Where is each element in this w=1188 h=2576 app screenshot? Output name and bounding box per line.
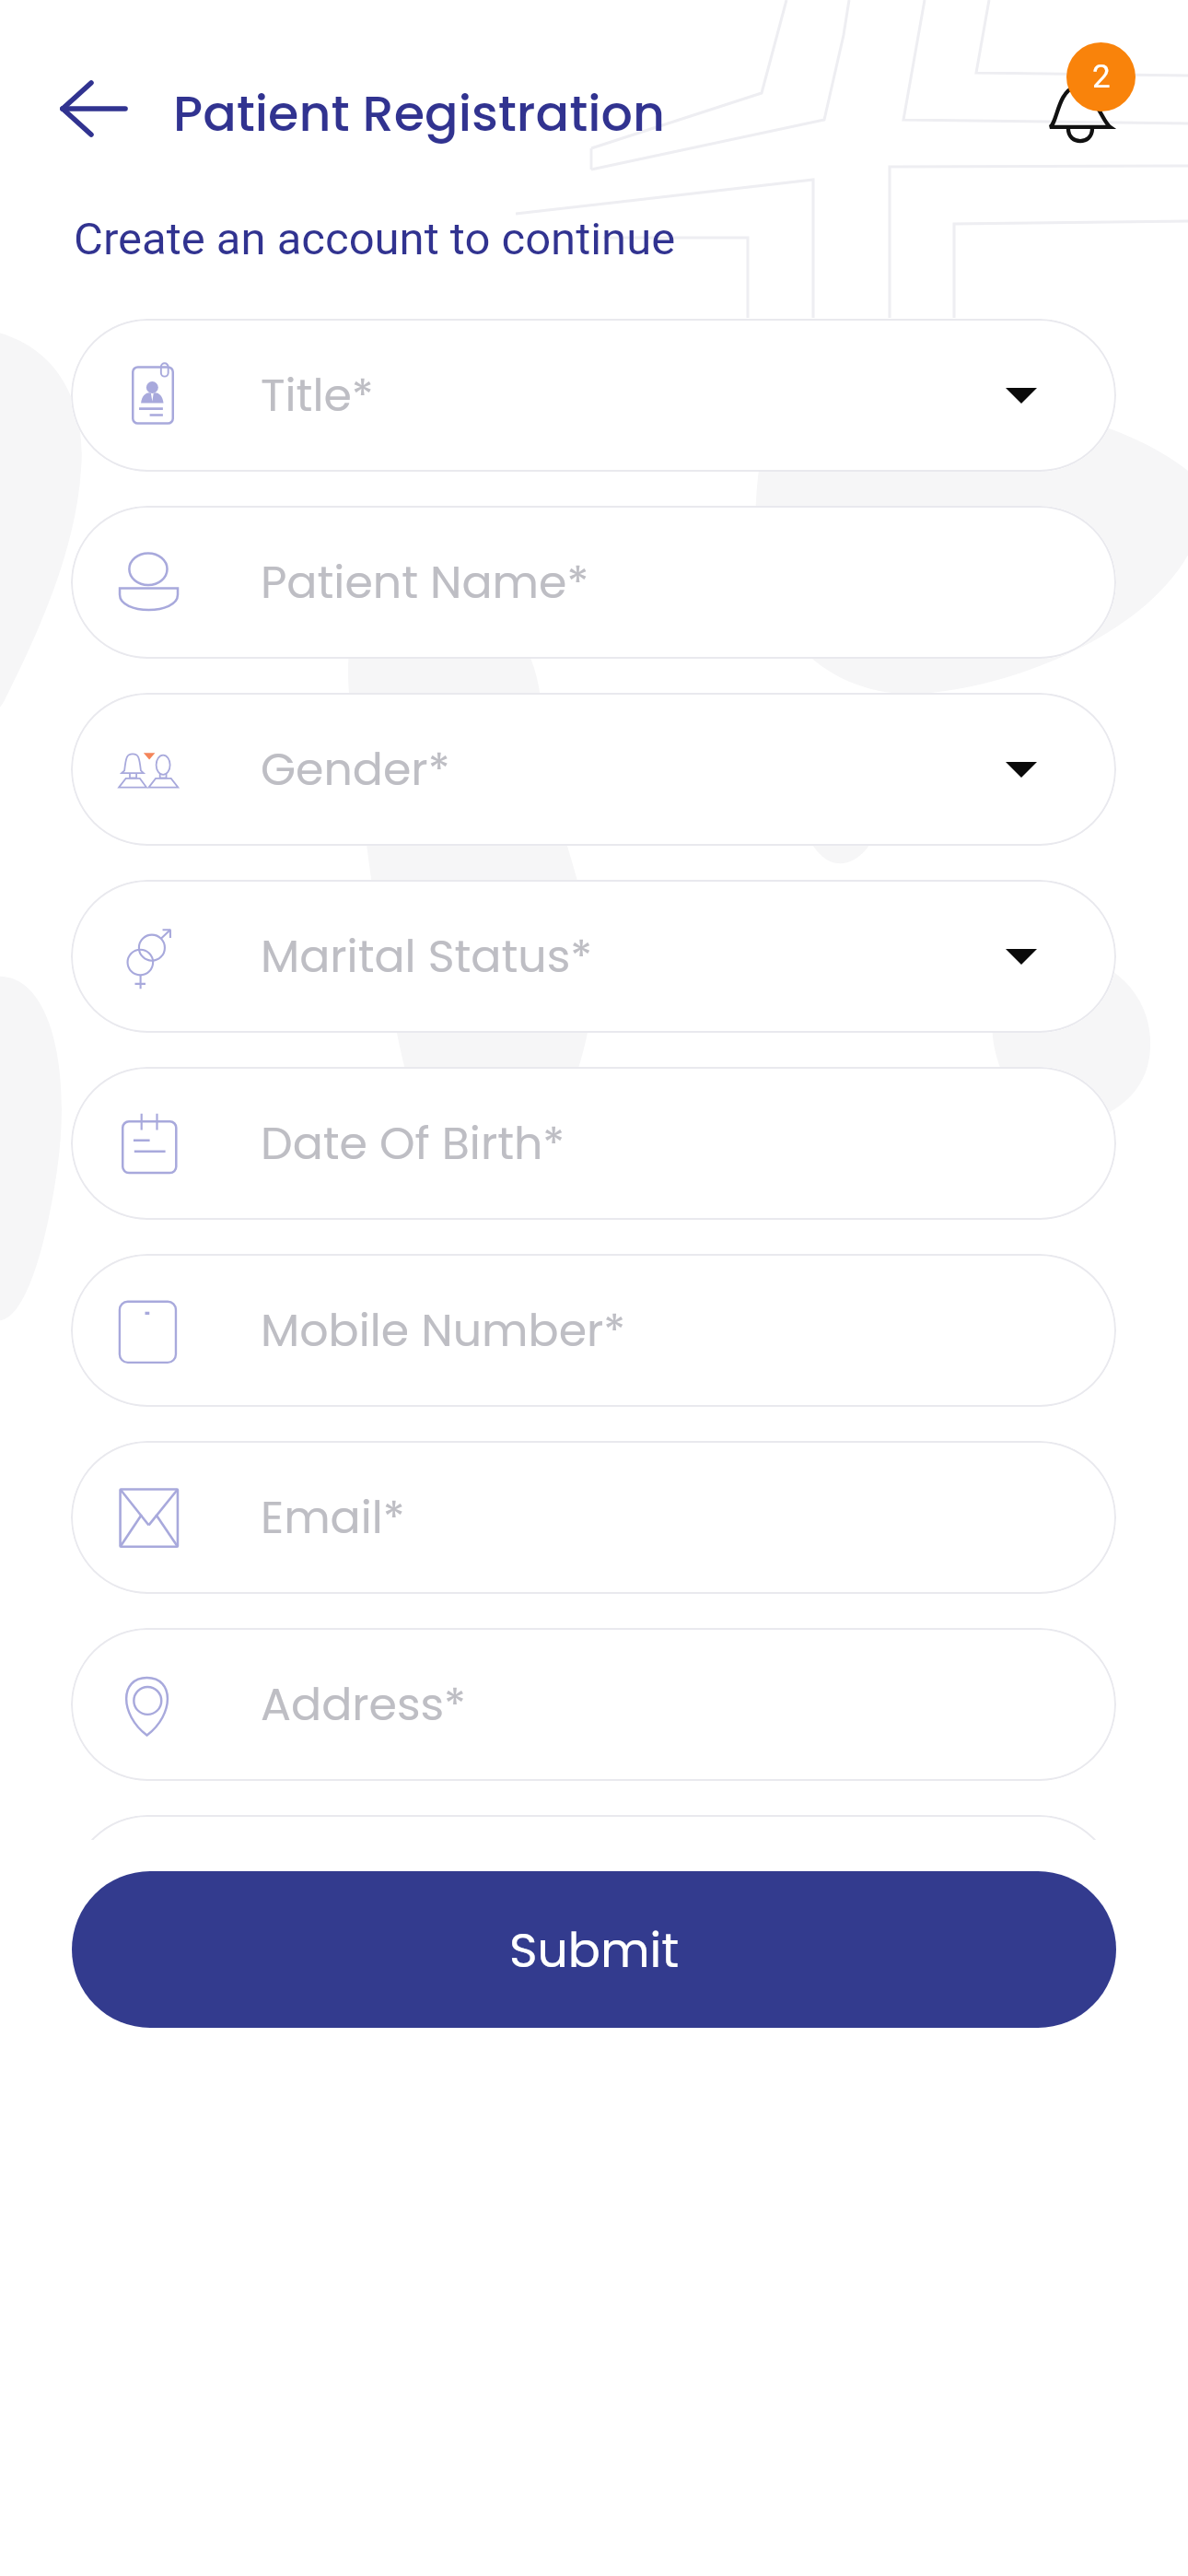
button[interactable]: Title* (71, 319, 1116, 472)
button[interactable]: Notifications (1043, 79, 1119, 155)
button[interactable]: Date Of Birth* (71, 1067, 1116, 1220)
staticText: Marital Status* (261, 925, 593, 989)
staticText: Address* (261, 1673, 466, 1737)
staticText: Create an account to continue (74, 213, 676, 265)
button[interactable]: Address* (71, 1628, 1116, 1781)
staticText: Gender* (261, 738, 450, 802)
staticText: Submit (509, 1916, 680, 1984)
button[interactable]: Gender* (71, 693, 1116, 846)
button[interactable]: Marital Status* (71, 880, 1116, 1033)
staticText: Title* (261, 364, 374, 427)
button[interactable]: Mobile Number* (71, 1254, 1116, 1407)
staticText: Mobile Number* (261, 1299, 626, 1363)
button[interactable]: Submit (72, 1871, 1116, 2028)
staticText: Date Of Birth* (261, 1112, 565, 1176)
staticText: Email* (261, 1486, 405, 1550)
button[interactable]: Patient Name* (71, 506, 1116, 659)
staticText: Patient Registration (173, 78, 666, 148)
button[interactable]: Email* (71, 1441, 1116, 1594)
button[interactable] (71, 1815, 1116, 1840)
staticText: 2 (1092, 58, 1111, 96)
button[interactable]: Back (41, 70, 145, 147)
staticText: Patient Name* (261, 551, 589, 615)
